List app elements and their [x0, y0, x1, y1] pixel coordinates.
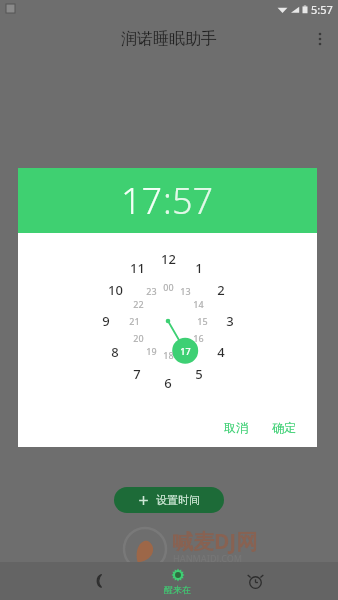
staticText: 润诺睡眠助手 — [121, 29, 217, 49]
button[interactable]: More options — [302, 21, 338, 57]
staticText: 21 — [129, 315, 140, 327]
staticText: 23 — [146, 285, 157, 297]
button[interactable]: 确定 — [263, 414, 305, 441]
staticText: : — [163, 176, 172, 225]
staticText: 17 — [121, 176, 163, 225]
button[interactable]: 醒来在 — [138, 562, 216, 600]
button[interactable]: Sleep — [60, 562, 138, 600]
staticText: 5 — [195, 365, 203, 383]
staticText: 15 — [197, 315, 208, 327]
staticText: 1 — [195, 259, 203, 277]
staticText: 喊麦DJ网 — [172, 527, 258, 556]
staticText: 11 — [130, 259, 145, 277]
staticText: 取消 — [224, 420, 248, 435]
staticText: 6 — [164, 374, 172, 392]
staticText: 19 — [146, 345, 157, 357]
staticText: 5:57 — [311, 2, 333, 17]
staticText: 13 — [180, 285, 191, 297]
button[interactable]: 设置时间 — [114, 487, 224, 513]
staticText: 16 — [193, 332, 204, 344]
staticText: 17 — [180, 345, 191, 357]
staticText: 3 — [226, 312, 234, 330]
staticText: 8 — [111, 343, 119, 361]
staticText: 10 — [108, 281, 123, 299]
staticText: 9 — [102, 312, 110, 330]
staticText: 4 — [217, 343, 225, 361]
button[interactable]: Clock face — [88, 241, 248, 401]
staticText: 醒来在 — [164, 584, 191, 595]
staticText: 18 — [163, 349, 174, 361]
staticText: 00 — [163, 281, 174, 293]
staticText: HANMAIDJ.COM — [173, 552, 242, 564]
button[interactable]: 57 — [172, 176, 214, 225]
staticText: 20 — [133, 332, 144, 344]
button[interactable]: 取消 — [215, 414, 257, 441]
staticText: 确定 — [272, 420, 296, 435]
staticText: 2 — [217, 281, 225, 299]
button[interactable]: Alarm — [216, 562, 294, 600]
staticText: 设置时间 — [156, 493, 200, 507]
staticText: 7 — [133, 365, 141, 383]
staticText: 22 — [133, 298, 144, 310]
staticText: 14 — [193, 298, 204, 310]
button[interactable]: 17 — [121, 176, 163, 225]
staticText: 57 — [172, 176, 214, 225]
staticText: 12 — [161, 250, 176, 268]
